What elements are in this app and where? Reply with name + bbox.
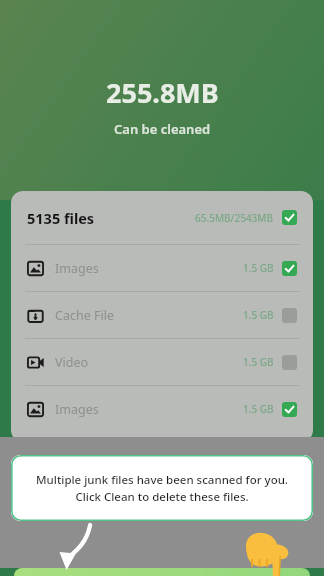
button[interactable]: Multiple junk files have been scanned fo… — [11, 455, 313, 521]
button[interactable]: Video — [11, 339, 313, 385]
button[interactable]: Images — [11, 386, 313, 432]
button[interactable]: Not selected — [282, 355, 297, 370]
other: Tap here — [243, 528, 293, 576]
button[interactable]: Not selected — [282, 308, 297, 323]
staticText: 5135 files — [27, 208, 95, 228]
button[interactable]: Selected — [282, 210, 297, 225]
staticText: Multiple junk files have been scanned fo… — [23, 472, 301, 504]
staticText: Images — [55, 401, 99, 418]
button[interactable] — [14, 568, 310, 576]
staticText: 1.5 GB — [243, 402, 274, 416]
button[interactable]: 5135 files — [11, 191, 313, 244]
staticText: Images — [55, 260, 99, 277]
staticText: Can be cleaned — [114, 120, 211, 138]
staticText: Cache File — [55, 307, 114, 324]
staticText: 1.5 GB — [243, 308, 274, 322]
staticText: 1.5 GB — [243, 355, 274, 369]
staticText: 255.8MB — [106, 74, 219, 111]
button[interactable]: Images — [11, 245, 313, 291]
button[interactable]: Cache File — [11, 292, 313, 338]
staticText: 1.5 GB — [243, 261, 274, 275]
button[interactable]: Selected — [282, 261, 297, 276]
staticText: 65.5MB/2543MB — [195, 211, 274, 225]
button[interactable]: Selected — [282, 402, 297, 417]
staticText: Video — [55, 354, 89, 371]
